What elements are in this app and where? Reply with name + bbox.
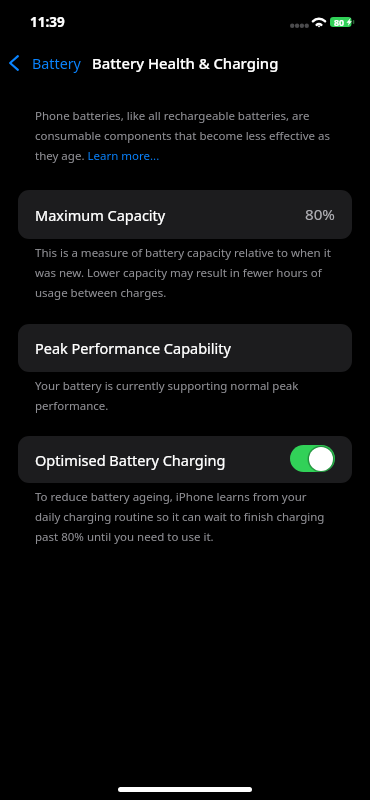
button[interactable]: Maximum Capacity — [18, 190, 352, 239]
staticText: Your battery is currently supporting nor… — [35, 374, 299, 414]
button[interactable]: Optimised Battery Charging — [18, 436, 352, 483]
staticText: 11:39 — [30, 13, 65, 31]
button[interactable]: Battery — [5, 46, 87, 80]
staticText: Optimised Battery Charging — [35, 450, 226, 470]
staticText: Peak Performance Capability — [35, 338, 231, 358]
staticText: 80 — [334, 17, 345, 29]
staticText: Phone batteries, like all rechargeable b… — [35, 104, 330, 164]
staticText: Battery Health & Charging — [92, 53, 279, 73]
staticText: This is a measure of battery capacity re… — [35, 241, 331, 301]
button[interactable]: Optimised Battery Charging toggle — [290, 445, 335, 472]
staticText: To reduce battery ageing, iPhone learns … — [35, 485, 325, 545]
button[interactable]: Peak Performance Capability — [18, 324, 352, 372]
staticText: 80% — [305, 204, 335, 225]
staticText: Battery — [32, 54, 81, 73]
staticText: Maximum Capacity — [35, 205, 166, 225]
